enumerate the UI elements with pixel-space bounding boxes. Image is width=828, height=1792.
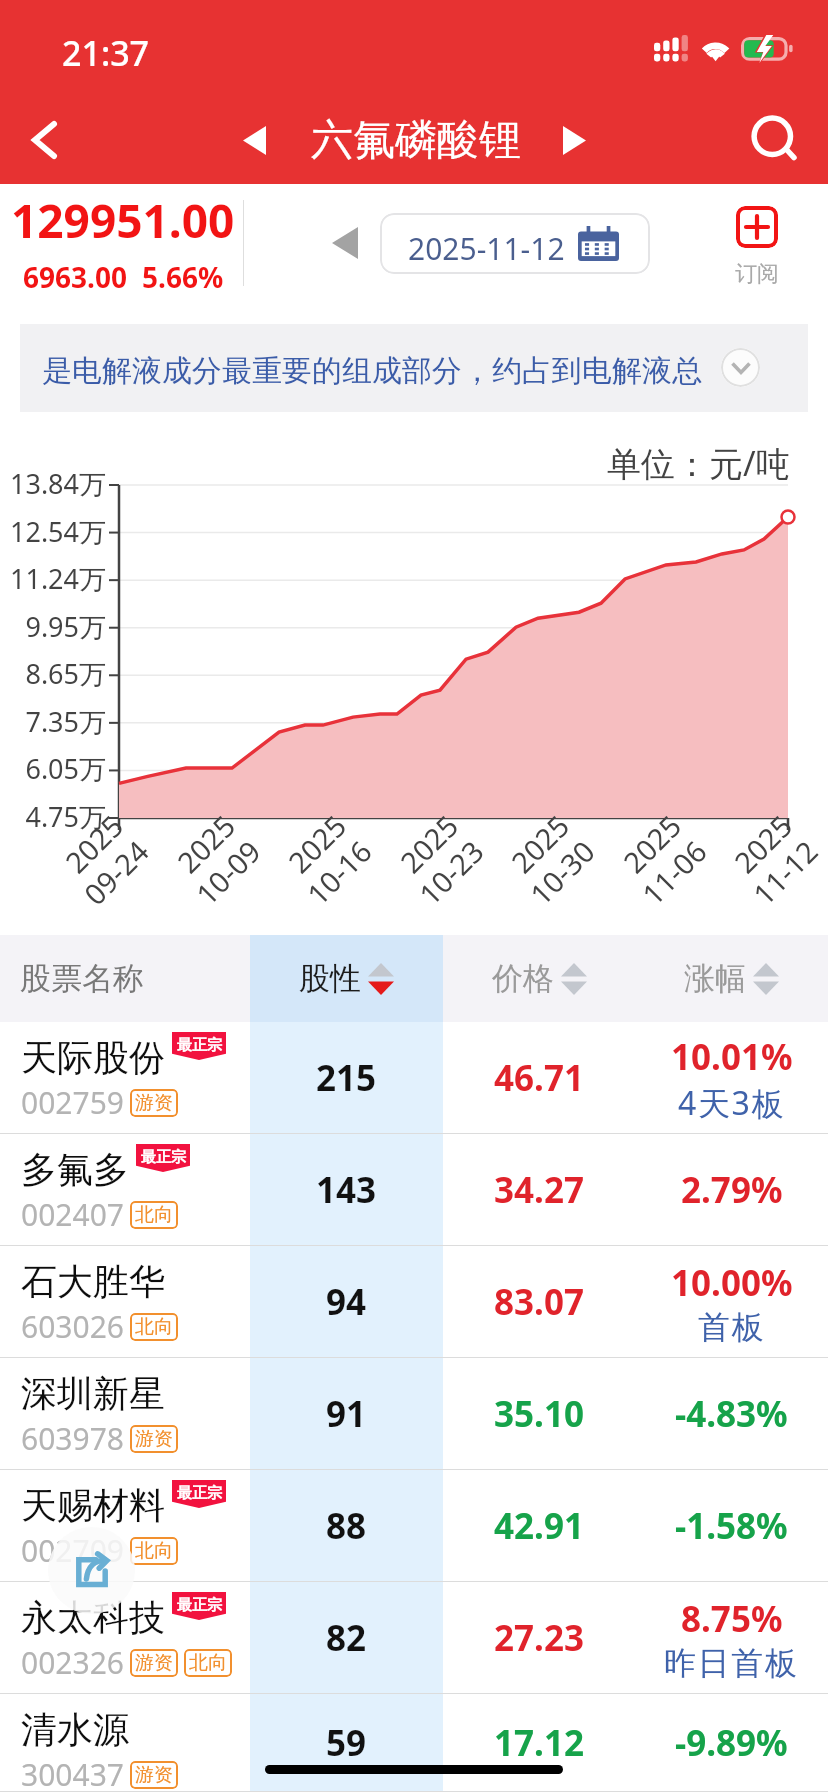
staticText: 002709 (21, 1530, 124, 1571)
staticText: 35.10 (494, 1390, 584, 1438)
staticText: 82 (326, 1614, 367, 1662)
staticText: 27.23 (494, 1614, 584, 1662)
button[interactable]: 天际股份 (0, 1022, 828, 1134)
button[interactable]: 清水源 (0, 1694, 828, 1792)
staticText: 北向 (189, 1651, 227, 1675)
staticText: -9.89% (675, 1719, 788, 1767)
staticText: 83.07 (494, 1278, 584, 1326)
staticText: 2025 11-06 (607, 806, 715, 914)
button[interactable]: Previous sector (219, 110, 289, 170)
staticText: 34.27 (494, 1166, 584, 1214)
staticText: 300437 (21, 1754, 124, 1792)
staticText: 2025 10-09 (161, 806, 269, 914)
button[interactable]: Search (728, 95, 828, 184)
staticText: 北向 (135, 1315, 173, 1339)
staticText: 多氟多 (21, 1147, 129, 1192)
staticText: -1.58% (675, 1502, 788, 1550)
staticText: 91 (326, 1390, 367, 1438)
staticText: 2.79% (681, 1166, 783, 1214)
button[interactable]: 永太科技 (0, 1582, 828, 1694)
staticText: 94 (326, 1278, 367, 1326)
button[interactable]: 多氟多 (0, 1134, 828, 1246)
staticText: 单位：元/吨 (607, 440, 790, 486)
staticText: 4.75万 (0, 798, 106, 835)
staticText: 2025 11-12 (718, 806, 826, 914)
staticText: 8.75% (681, 1595, 783, 1643)
staticText: 10.00% (671, 1259, 793, 1307)
staticText: 游资 (135, 1651, 173, 1675)
staticText: 股票名称 (20, 959, 144, 998)
staticText: 六氟磷酸锂 (311, 114, 521, 167)
button[interactable]: 天赐材料 (0, 1470, 828, 1582)
button[interactable]: 涨幅 (635, 935, 828, 1022)
staticText: 石大胜华 (21, 1259, 165, 1304)
staticText: 游资 (135, 1091, 173, 1115)
staticText: 9.95万 (0, 608, 106, 645)
staticText: 42.91 (494, 1502, 584, 1550)
staticText: 129951.00 (11, 189, 235, 252)
staticText: 价格 (492, 959, 554, 998)
button[interactable]: 2025-11-12 (380, 213, 650, 274)
staticText: 603978 (21, 1418, 124, 1459)
staticText: 北向 (135, 1203, 173, 1227)
staticText: -4.83% (675, 1390, 788, 1438)
button[interactable]: Back (0, 95, 88, 184)
staticText: 6.05万 (0, 750, 106, 787)
staticText: 2025 10-16 (272, 806, 380, 914)
button[interactable]: Previous day (330, 224, 360, 262)
staticText: 永太科技 (21, 1595, 165, 1640)
staticText: 昨日首板 (664, 1643, 799, 1683)
staticText: 002407 (21, 1194, 124, 1235)
staticText: 4天3板 (678, 1081, 786, 1125)
staticText: 6963.00 (23, 258, 127, 296)
staticText: 59 (326, 1719, 367, 1767)
staticText: 涨幅 (684, 959, 746, 998)
staticText: 88 (326, 1502, 367, 1550)
button[interactable]: 深圳新星 (0, 1358, 828, 1470)
staticText: 7.35万 (0, 703, 106, 740)
staticText: 46.71 (494, 1054, 584, 1102)
staticText: 215 (316, 1054, 377, 1102)
staticText: 11.24万 (0, 560, 106, 597)
staticText: 深圳新星 (21, 1371, 165, 1416)
staticText: 603026 (21, 1306, 124, 1347)
button[interactable]: Share (48, 1527, 135, 1614)
staticText: 清水源 (21, 1707, 129, 1752)
staticText: 2025 09-24 (49, 806, 157, 914)
button[interactable]: 是电解液成分最重要的组成部分，约占到电解液总 (20, 324, 808, 412)
staticText: 最正宗 (141, 1148, 186, 1167)
staticText: 最正宗 (177, 1036, 222, 1055)
staticText: 游资 (135, 1427, 173, 1451)
staticText: 是电解液成分最重要的组成部分，约占到电解液总 (42, 352, 702, 390)
staticText: 股性 (299, 959, 361, 998)
staticText: 21:37 (62, 30, 150, 76)
staticText: 13.84万 (0, 465, 106, 502)
staticText: 2025-11-12 (408, 228, 565, 269)
staticText: 最正宗 (177, 1484, 222, 1503)
staticText: 17.12 (494, 1719, 584, 1767)
button[interactable]: Next sector (539, 110, 609, 170)
staticText: 12.54万 (0, 513, 106, 550)
staticText: 订阅 (735, 260, 779, 288)
button[interactable]: 订阅 (712, 206, 802, 288)
staticText: 2025 10-30 (495, 806, 603, 914)
staticText: 天际股份 (21, 1035, 165, 1080)
staticText: 5.66% (142, 258, 224, 296)
staticText: 北向 (135, 1539, 173, 1563)
staticText: 8.65万 (0, 655, 106, 692)
button[interactable]: 股票名称 (0, 935, 250, 1022)
staticText: 2025 10-23 (384, 806, 492, 914)
button[interactable]: 石大胜华 (0, 1246, 828, 1358)
staticText: 002326 (21, 1642, 124, 1683)
staticText: 最正宗 (177, 1596, 222, 1615)
staticText: 天赐材料 (21, 1483, 165, 1528)
staticText: 首板 (698, 1307, 766, 1347)
button[interactable]: 股性 (250, 935, 443, 1022)
staticText: 002759 (21, 1082, 124, 1123)
staticText: 10.01% (671, 1033, 793, 1081)
staticText: 游资 (135, 1763, 173, 1787)
staticText: 143 (316, 1166, 377, 1214)
button[interactable]: 价格 (443, 935, 635, 1022)
